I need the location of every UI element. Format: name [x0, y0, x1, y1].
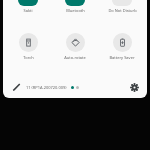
- staticText: Do Not Disturb: [108, 8, 137, 13]
- button[interactable]: Battery Saver: [100, 33, 144, 60]
- button[interactable]: Sakti: [6, 0, 50, 15]
- button[interactable]: Torch: [6, 33, 50, 60]
- button[interactable]: Do Not Disturb: [100, 0, 144, 15]
- staticText: Auto-rotate: [64, 55, 86, 60]
- button[interactable]: Bluetooth: [53, 0, 97, 15]
- staticText: Battery Saver: [109, 55, 135, 60]
- button[interactable]: Auto-rotate: [53, 33, 97, 60]
- staticText: Torch: [23, 55, 34, 60]
- staticText: Bluetooth: [66, 8, 85, 13]
- button[interactable]: Settings: [127, 80, 141, 94]
- staticText: 11 (RP1A.200720.009): [26, 85, 67, 90]
- button[interactable]: Edit tiles: [9, 80, 23, 94]
- staticText: Sakti: [23, 8, 33, 13]
